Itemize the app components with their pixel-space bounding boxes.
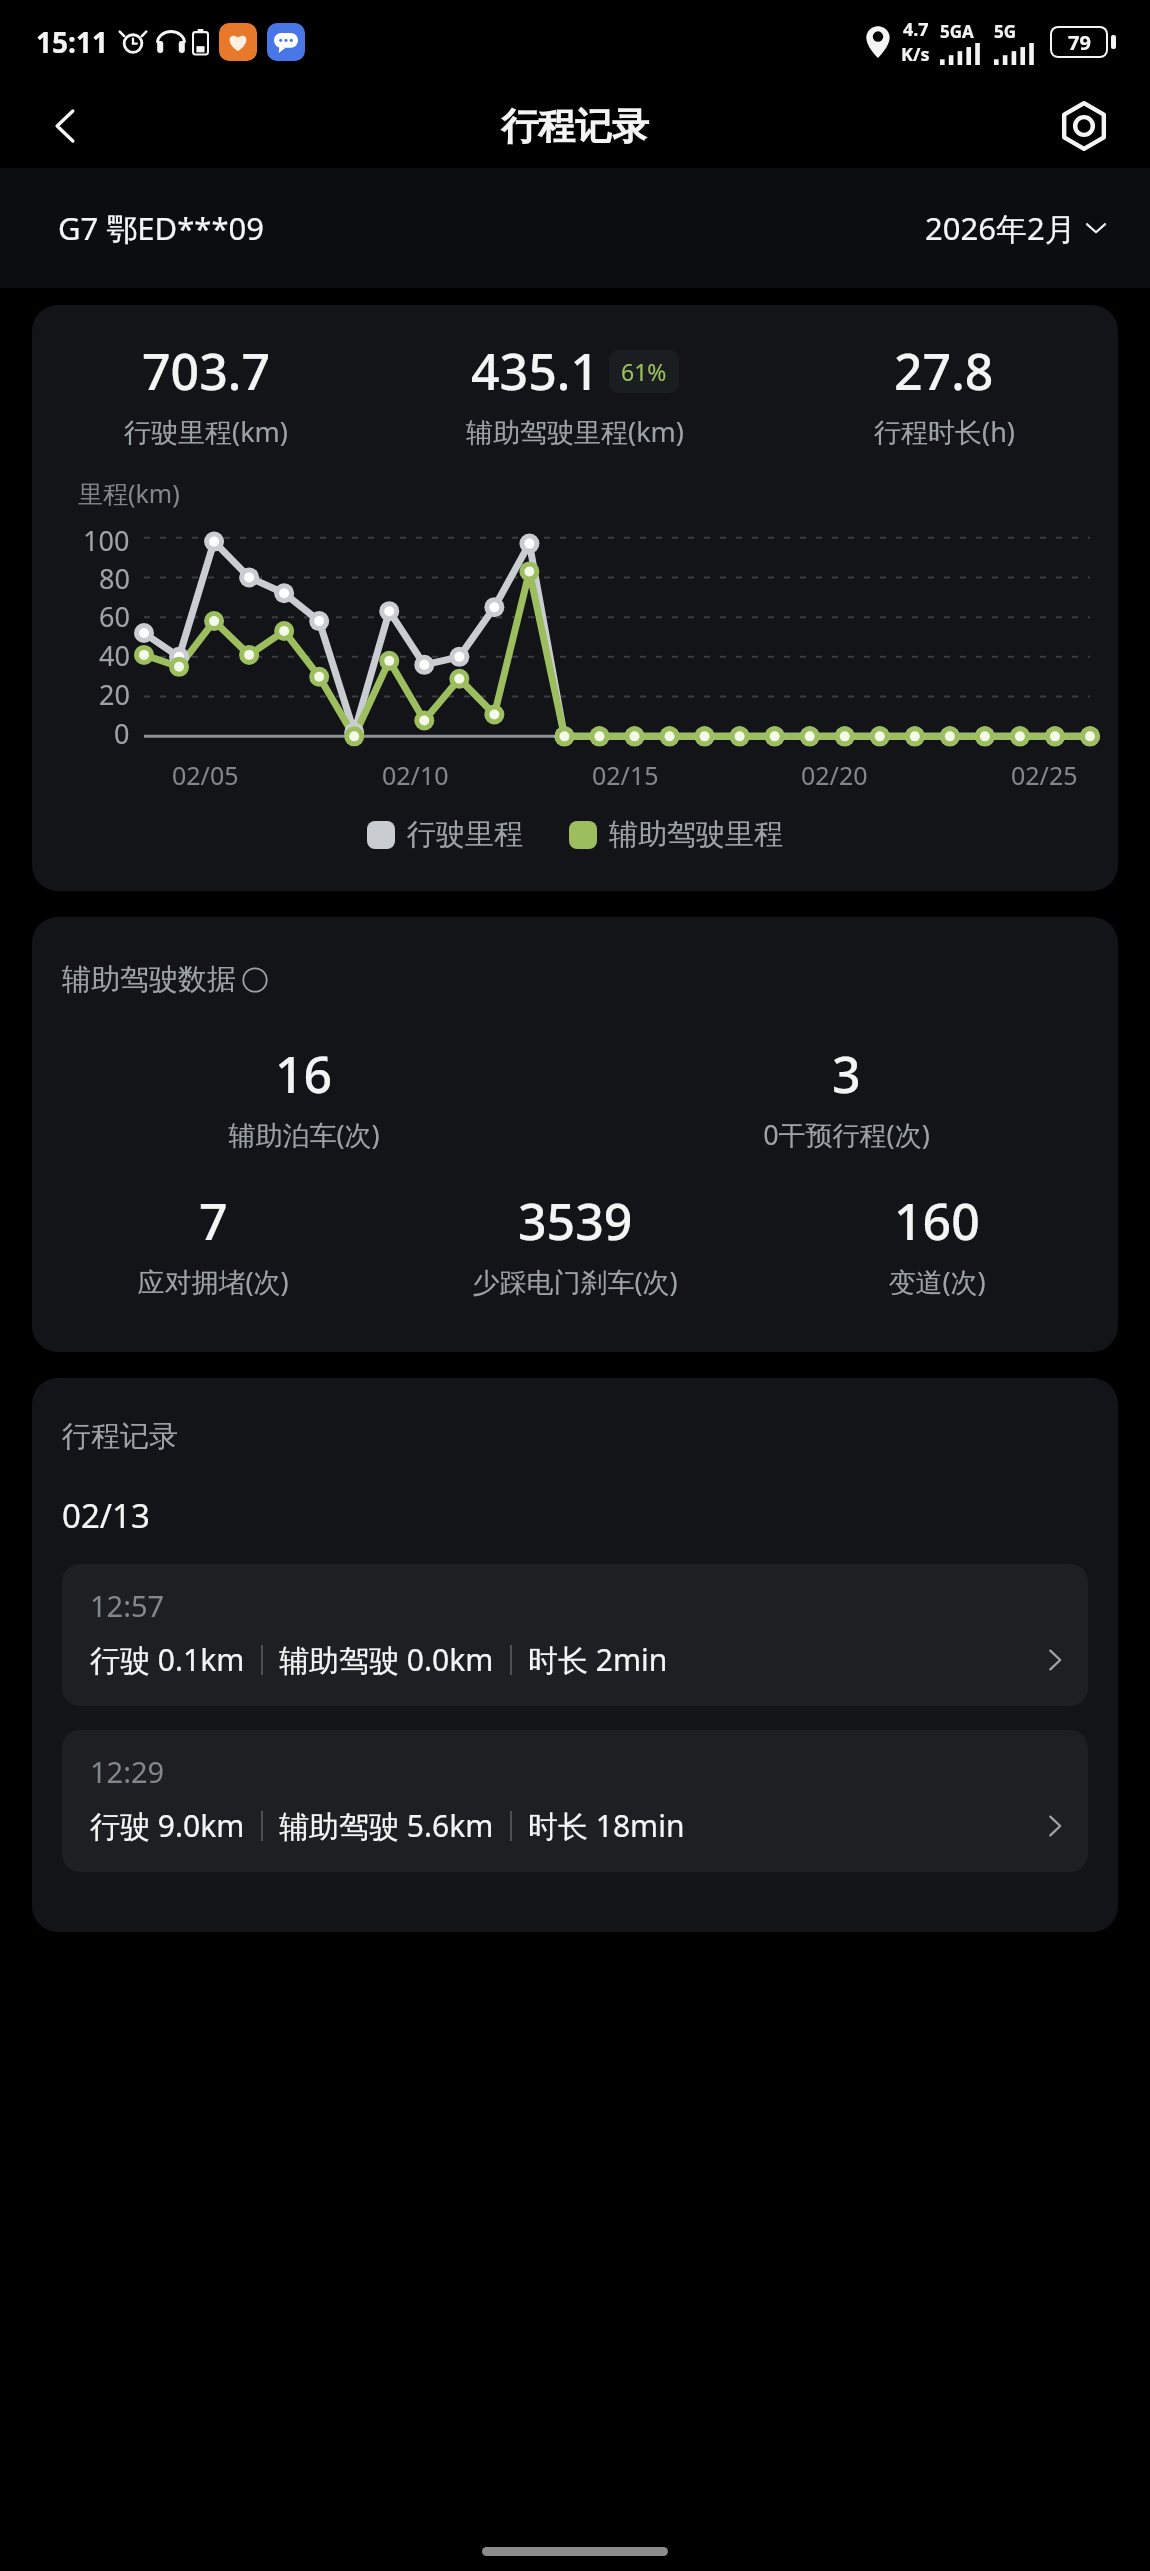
staticText: 2026年2月 bbox=[925, 207, 1076, 249]
staticText: 02/05 bbox=[172, 758, 239, 792]
staticText: 辅助驾驶数据 bbox=[62, 961, 236, 998]
staticText: 27.8 bbox=[894, 337, 994, 405]
staticText: 0干预行程(次) bbox=[763, 1116, 930, 1153]
staticText: 80 bbox=[99, 560, 130, 597]
staticText: 辅助泊车(次) bbox=[228, 1116, 380, 1153]
button[interactable]: 12:57 bbox=[62, 1564, 1088, 1706]
staticText: 行驶里程(km) bbox=[124, 413, 288, 450]
staticText: 12:57 bbox=[90, 1586, 165, 1625]
staticText: 79 bbox=[1068, 29, 1091, 56]
staticText: 02/15 bbox=[592, 758, 659, 792]
staticText: 辅助驾驶 5.6km bbox=[279, 1805, 494, 1846]
staticText: 应对拥堵(次) bbox=[137, 1263, 289, 1300]
staticText: 435.1 bbox=[471, 337, 599, 405]
staticText: 时长 2min bbox=[528, 1639, 668, 1680]
staticText: 12:29 bbox=[90, 1752, 165, 1791]
staticText: 行程时长(h) bbox=[874, 413, 1015, 450]
staticText: 变道(次) bbox=[888, 1263, 986, 1300]
staticText: 61% bbox=[621, 356, 667, 387]
button[interactable]: Info bbox=[242, 967, 268, 993]
staticText: 辅助驾驶里程 bbox=[609, 816, 783, 853]
staticText: 60 bbox=[99, 598, 130, 635]
button[interactable]: 12:29 bbox=[62, 1730, 1088, 1872]
staticText: 里程(km) bbox=[78, 476, 180, 510]
staticText: 16 bbox=[275, 1040, 333, 1108]
staticText: G7 鄂ED***09 bbox=[58, 207, 264, 249]
staticText: 703.7 bbox=[142, 337, 270, 405]
staticText: 行程记录 bbox=[62, 1418, 178, 1455]
staticText: K/s bbox=[901, 42, 930, 67]
staticText: 辅助驾驶里程(km) bbox=[466, 413, 684, 450]
staticText: 辅助驾驶 0.0km bbox=[279, 1639, 494, 1680]
staticText: 02/25 bbox=[1011, 758, 1078, 792]
staticText: 40 bbox=[99, 637, 130, 674]
staticText: 行驶 0.1km bbox=[90, 1639, 245, 1680]
staticText: 4.7 bbox=[903, 17, 929, 42]
staticText: 100 bbox=[83, 522, 130, 559]
staticText: 7 bbox=[199, 1187, 228, 1255]
staticText: 3539 bbox=[518, 1187, 633, 1255]
staticText: 3 bbox=[832, 1040, 861, 1108]
staticText: 02/10 bbox=[382, 758, 449, 792]
staticText: 02/13 bbox=[62, 1493, 150, 1538]
button[interactable]: Settings bbox=[1046, 88, 1122, 164]
staticText: 时长 18min bbox=[528, 1805, 685, 1846]
staticText: 少踩电门刹车(次) bbox=[472, 1263, 678, 1300]
staticText: 02/20 bbox=[801, 758, 868, 792]
staticText: 5GA bbox=[940, 20, 974, 43]
staticText: 5G bbox=[994, 20, 1017, 43]
staticText: 行驶 9.0km bbox=[90, 1805, 245, 1846]
button[interactable]: 2026年2月 bbox=[925, 207, 1108, 249]
button[interactable]: Back bbox=[28, 88, 104, 164]
staticText: 行驶里程 bbox=[407, 816, 523, 853]
staticText: 160 bbox=[894, 1187, 980, 1255]
staticText: 20 bbox=[99, 676, 130, 713]
staticText: 0 bbox=[114, 715, 130, 752]
staticText: 15:11 bbox=[36, 23, 108, 61]
staticText: 行程记录 bbox=[501, 103, 649, 150]
